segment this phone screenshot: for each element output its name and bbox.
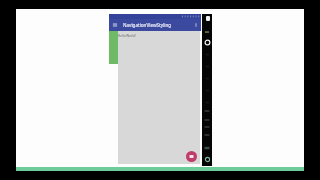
- button[interactable]: Emulator control 1: [205, 52, 210, 57]
- button[interactable]: Emulator control 3: [205, 76, 210, 81]
- staticText: Hello World!: [118, 34, 136, 38]
- button[interactable]: More options: [193, 22, 199, 28]
- button[interactable]: Emulator control 2: [205, 64, 210, 69]
- button[interactable]: Compose email: [186, 151, 197, 162]
- button[interactable]: Send message: [204, 146, 210, 151]
- button[interactable]: Open navigation drawer: [111, 21, 119, 29]
- staticText: NavigationViewStyling: [123, 22, 172, 28]
- button[interactable]: Open navigation drawer: [109, 19, 201, 31]
- button[interactable]: Emulator control 6: [204, 109, 210, 113]
- button[interactable]: Power: [204, 39, 211, 46]
- button[interactable]: Emulator control 5: [205, 100, 210, 105]
- button[interactable]: Close: [206, 16, 210, 21]
- button[interactable]: Emulator control 9: [204, 133, 210, 137]
- button[interactable]: Volume up: [204, 29, 210, 35]
- button[interactable]: Emulator control 4: [205, 88, 210, 93]
- button[interactable]: Rotate: [204, 156, 211, 163]
- button[interactable]: Emulator control 8: [204, 125, 210, 129]
- button[interactable]: Emulator control 7: [204, 118, 210, 122]
